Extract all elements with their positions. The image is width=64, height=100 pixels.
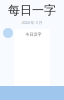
staticText: 今日汉字 [25,32,41,37]
staticText: 每日一字 [8,3,56,18]
staticText: 2024 年 3 月 [21,20,42,25]
